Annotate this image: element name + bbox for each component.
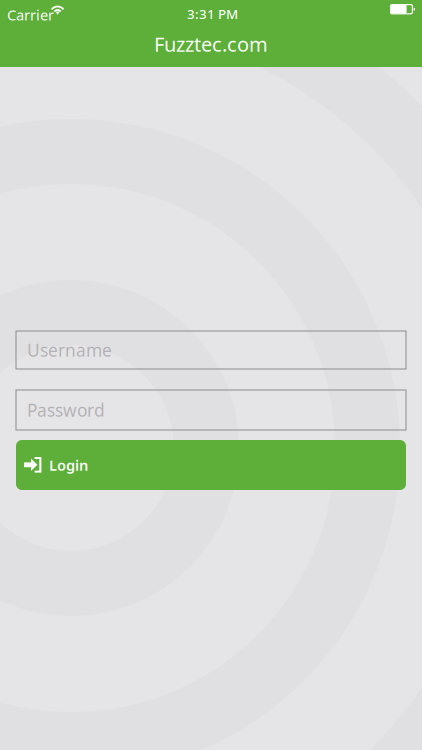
staticText: 3:31 PM: [187, 5, 238, 23]
staticText: Carrier: [7, 5, 54, 24]
staticText: Login: [49, 455, 88, 475]
staticText: Password: [27, 398, 105, 421]
button[interactable]: Login: [16, 440, 406, 490]
staticText: Username: [27, 338, 112, 361]
staticText: Fuzztec.com: [154, 31, 268, 57]
